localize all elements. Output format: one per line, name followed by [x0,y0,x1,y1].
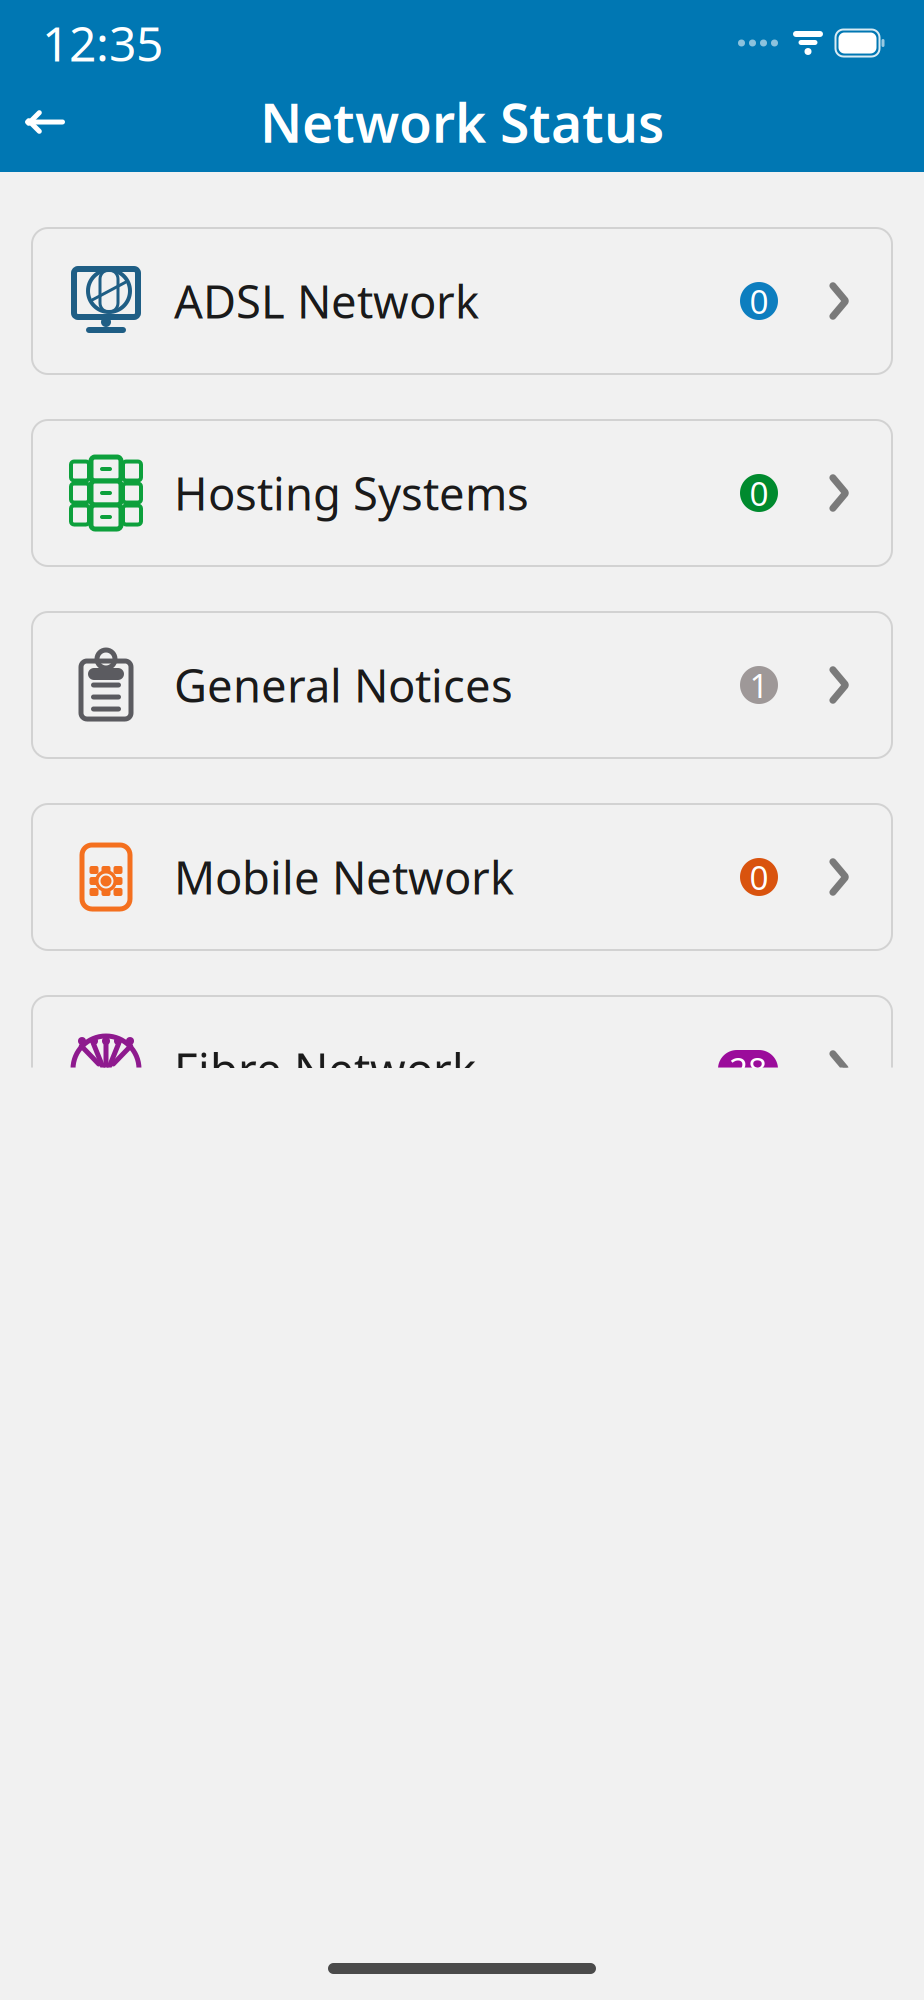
button[interactable]: ADSL Network [32,228,892,374]
staticText: 0 [749,279,768,323]
staticText: 0 [749,855,768,899]
button[interactable]: Mobile Network [32,804,892,950]
button[interactable]: Hosting Systems [32,420,892,566]
staticText: Hosting Systems [174,463,529,523]
staticText: Fibre Network [174,1039,476,1099]
staticText: ADSL Network [174,271,479,331]
button[interactable]: Fibre Network [32,996,892,1142]
staticText: 0 [749,471,768,515]
staticText: Network Status [260,87,664,157]
button[interactable]: General Notices [32,612,892,758]
staticText: 1 [749,663,768,707]
staticText: 28 [729,1047,767,1091]
staticText: General Notices [174,655,513,715]
staticText: Mobile Network [174,847,514,907]
staticText: 12:35 [42,11,163,75]
button[interactable]: Back [0,85,90,159]
